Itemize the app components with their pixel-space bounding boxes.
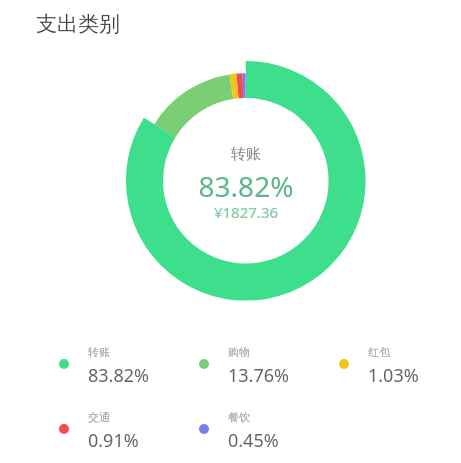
button[interactable]: 转账	[59, 345, 154, 387]
staticText: 0.45%	[228, 428, 279, 453]
staticText: 83.82%	[156, 167, 336, 205]
staticText: 餐饮	[228, 410, 250, 424]
staticText: ¥1827.36	[156, 202, 336, 222]
button[interactable]: 支出类别环形图	[126, 61, 366, 301]
button[interactable]: 交通	[59, 410, 154, 452]
staticText: 红包	[368, 345, 390, 359]
staticText: 13.76%	[228, 363, 289, 388]
staticText: 转账	[88, 345, 110, 359]
button[interactable]: 餐饮	[199, 410, 294, 452]
staticText: 0.91%	[88, 428, 139, 453]
staticText: 83.82%	[88, 363, 149, 388]
staticText: 购物	[228, 345, 250, 359]
button[interactable]: 购物	[199, 345, 294, 387]
staticText: 1.03%	[368, 363, 419, 388]
staticText: 交通	[88, 410, 110, 424]
staticText: 支出类别	[36, 11, 120, 37]
button[interactable]: 红包	[339, 345, 434, 387]
staticText: 转账	[156, 145, 336, 164]
